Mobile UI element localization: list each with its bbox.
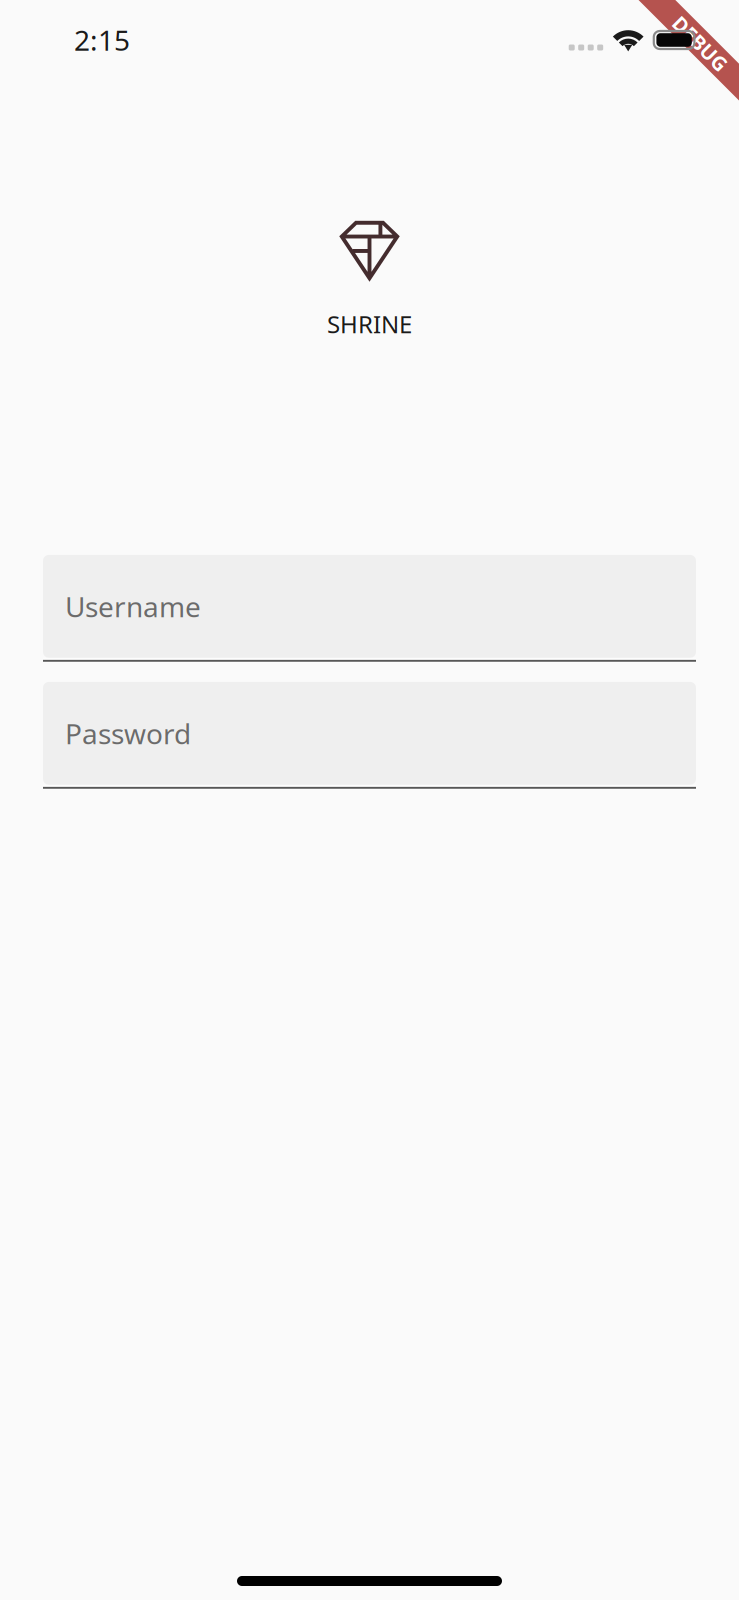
staticText: 2:15 [74,21,130,59]
button[interactable]: Password [43,682,696,790]
staticText: SHRINE [327,308,412,340]
staticText: Username [65,588,201,625]
staticText: Password [65,715,191,752]
staticText: DEBUG [666,30,734,57]
button[interactable]: Username [43,555,696,663]
